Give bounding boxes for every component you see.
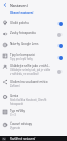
button[interactable]: Návrhy Google Lens — [10, 42, 51, 46]
button[interactable]: Gesta — [10, 94, 51, 106]
button[interactable]: Switch on — [57, 43, 63, 48]
staticText: Zařízení — [10, 84, 20, 88]
button[interactable]: Switch on — [57, 21, 63, 26]
button[interactable]: Back — [1, 1, 9, 9]
staticText: 3 × 3 — [10, 113, 16, 117]
staticText: Typ mřížky — [10, 109, 26, 113]
staticText: Tipy pro lepší fotky — [10, 57, 33, 61]
staticText: Vypnuto — [10, 126, 21, 130]
button[interactable]: Rozšířené nastavení — [0, 136, 67, 141]
staticText: Časové odstupy — [10, 122, 33, 126]
staticText: Uložit polohu — [10, 21, 29, 25]
button[interactable]: Switch off — [57, 69, 63, 74]
button[interactable]: Switch off — [57, 32, 63, 37]
button[interactable]: Uložení na současné místo — [10, 80, 51, 88]
staticText: Rozšířené nastavení — [10, 137, 36, 141]
staticText: Uložení na současné místo — [10, 80, 48, 84]
staticText: Stisk tlačítka hlasitosti, Otevřít fotoa… — [10, 98, 51, 106]
staticText: Zvuky fotoaparátu — [10, 31, 36, 35]
button[interactable]: Ukládejte selfie jako v náhledu — [10, 64, 51, 76]
staticText: Návrhy Google Lens — [10, 42, 39, 46]
button[interactable]: Časové odstupy — [10, 122, 51, 130]
button[interactable]: Zvuky fotoaparátu — [10, 31, 51, 35]
staticText: Tipy ke kompozici — [10, 53, 35, 57]
staticText: Gesta — [10, 94, 19, 98]
button[interactable]: Uložit polohu — [10, 21, 51, 25]
staticText: Obecné nastavení — [10, 11, 34, 15]
button[interactable]: Tipy ke kompozici — [10, 53, 51, 61]
staticText: Ukládejte selfie jako v náhledu — [10, 64, 51, 68]
button[interactable]: Typ mřížky — [10, 109, 51, 117]
staticText: Ukládejte snímky tak, jak je vidíte v ná… — [10, 68, 51, 76]
staticText: Nastavení — [10, 3, 28, 8]
button[interactable]: Switch on — [57, 55, 63, 60]
